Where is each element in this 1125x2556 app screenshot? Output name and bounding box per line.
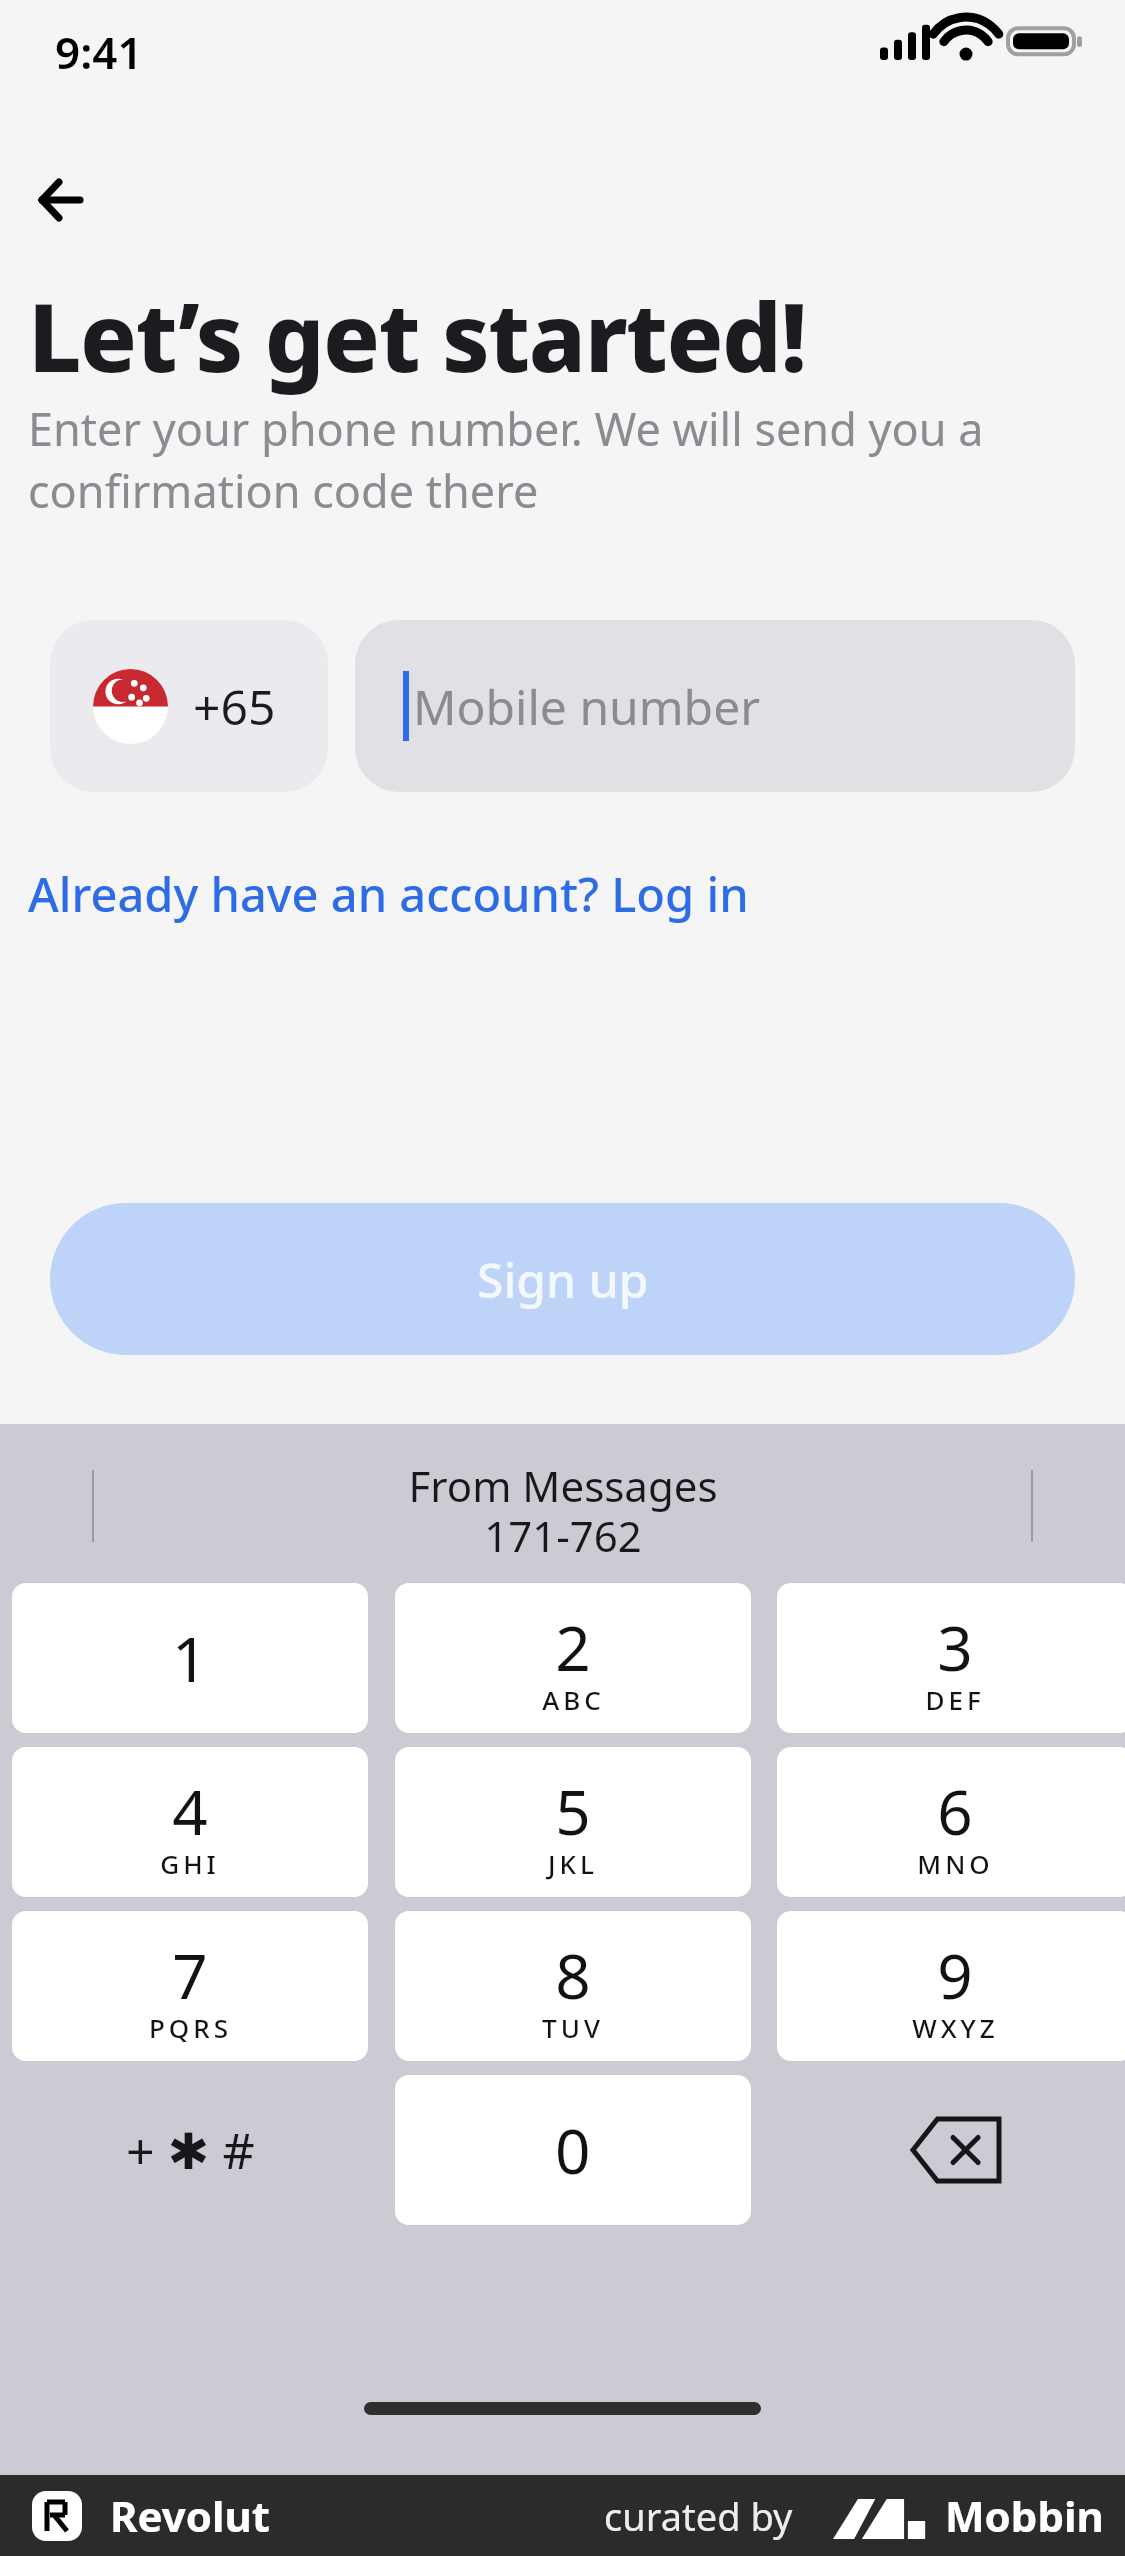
staticText: ABC xyxy=(542,1682,605,1717)
button[interactable]: Sign up xyxy=(50,1203,1075,1355)
staticText: 5 xyxy=(555,1769,591,1853)
staticText: Mobbin xyxy=(945,2487,1104,2544)
button[interactable]: Already have an account? Log in xyxy=(28,862,749,926)
button[interactable]: 6 xyxy=(777,1747,1125,1897)
button[interactable]: Back xyxy=(18,160,98,240)
button[interactable]: 4 xyxy=(12,1747,368,1897)
staticText: 0 xyxy=(555,2108,591,2192)
staticText: 8 xyxy=(555,1933,591,2017)
button[interactable]: 0 xyxy=(395,2075,751,2225)
staticText: Already have an account? Log in xyxy=(28,862,749,926)
staticText: + ✱ # xyxy=(126,2116,255,2184)
staticText: curated by xyxy=(604,2490,793,2542)
staticText: Let’s get started! xyxy=(28,272,806,400)
staticText: 1 xyxy=(172,1616,208,1700)
staticText: From Messages xyxy=(408,1457,718,1514)
staticText: WXYZ xyxy=(912,2010,999,2045)
button[interactable]: 5 xyxy=(395,1747,751,1897)
staticText: 9:41 xyxy=(55,22,143,82)
staticText: 3 xyxy=(937,1605,973,1689)
staticText: DEF xyxy=(925,1682,985,1717)
staticText: Mobile number xyxy=(413,674,761,739)
staticText: PQRS xyxy=(149,2010,232,2045)
staticText: 7 xyxy=(172,1933,208,2017)
staticText: TUV xyxy=(542,2010,604,2045)
staticText: 2 xyxy=(555,1605,591,1689)
button[interactable]: +65 xyxy=(50,620,328,792)
button[interactable]: Symbols xyxy=(12,2075,368,2225)
button[interactable]: 1 xyxy=(12,1583,368,1733)
button[interactable]: 8 xyxy=(395,1911,751,2061)
staticText: 6 xyxy=(937,1769,973,1853)
button[interactable]: Delete xyxy=(777,2075,1125,2225)
staticText: Enter your phone number. We will send yo… xyxy=(28,398,988,521)
button[interactable]: 7 xyxy=(12,1911,368,2061)
staticText: Revolut xyxy=(110,2487,271,2544)
button[interactable]: 9 xyxy=(777,1911,1125,2061)
staticText: 9 xyxy=(937,1933,973,2017)
button[interactable]: 2 xyxy=(395,1583,751,1733)
staticText: JKL xyxy=(548,1846,598,1881)
staticText: Sign up xyxy=(477,1247,649,1312)
button[interactable]: Mobile number xyxy=(355,620,1075,792)
staticText: MNO xyxy=(917,1846,994,1881)
staticText: +65 xyxy=(193,674,276,739)
staticText: GHI xyxy=(160,1846,220,1881)
staticText: 171-762 xyxy=(484,1507,642,1564)
staticText: 4 xyxy=(172,1769,208,1853)
button[interactable]: 3 xyxy=(777,1583,1125,1733)
